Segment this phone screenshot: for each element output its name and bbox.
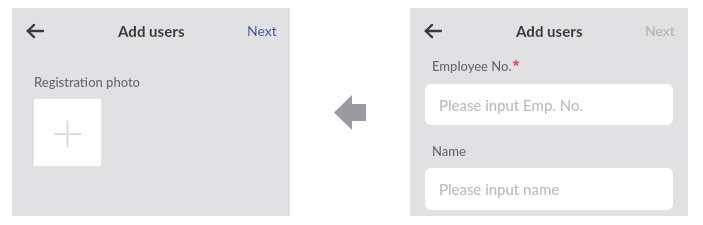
staticText: Please input name [439,180,560,198]
button[interactable]: Please input name [425,168,673,210]
button[interactable]: Previous step [334,95,366,130]
staticText: Next [645,22,675,39]
button[interactable]: Please input Emp. No. [425,84,673,125]
staticText: Add users [118,22,185,40]
button[interactable]: Next [638,16,682,44]
staticText: Next [247,22,277,39]
staticText: Employee No. [432,58,512,74]
staticText: Please input Emp. No. [439,96,583,114]
staticText: Registration photo [34,74,141,90]
button[interactable]: Back [414,12,452,50]
button[interactable]: Add registration photo [32,97,103,168]
button[interactable]: Back [16,12,54,50]
button[interactable]: Next [240,16,284,44]
staticText: Name [432,143,466,159]
staticText: Add users [516,22,583,40]
